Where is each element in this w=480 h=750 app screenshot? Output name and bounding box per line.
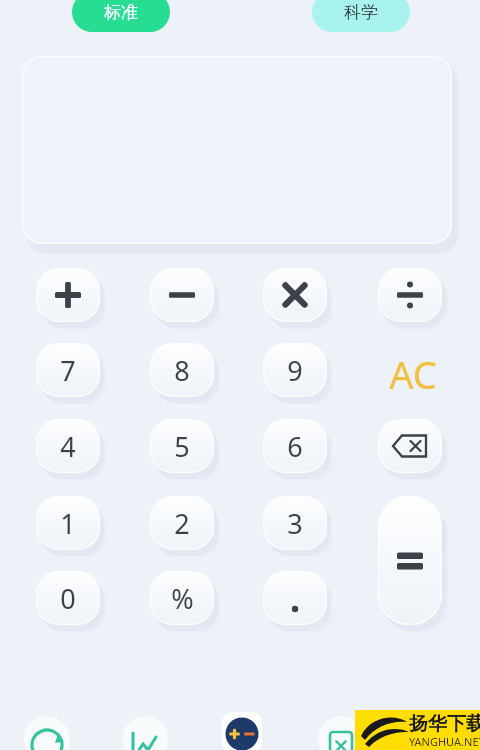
- staticText: 2: [174, 505, 190, 542]
- button[interactable]: 1: [36, 496, 106, 558]
- button[interactable]: 科学: [312, 0, 410, 32]
- button[interactable]: 8: [150, 343, 220, 405]
- staticText: 8: [174, 352, 190, 389]
- button[interactable]: %: [150, 571, 220, 633]
- button[interactable]: 9: [263, 343, 333, 405]
- button[interactable]: Functions: [318, 716, 364, 750]
- button[interactable]: 4: [36, 419, 106, 481]
- staticText: 4: [60, 428, 76, 465]
- staticText: 1: [60, 505, 76, 542]
- button[interactable]: Minus: [150, 268, 220, 330]
- button[interactable]: Divide: [378, 268, 448, 330]
- button[interactable]: Backspace: [378, 419, 448, 481]
- button[interactable]: Equals: [378, 496, 448, 633]
- button[interactable]: 标准: [72, 0, 170, 32]
- button[interactable]: 7: [36, 343, 106, 405]
- button[interactable]: Multiply: [263, 268, 333, 330]
- button[interactable]: Decimal point: [263, 571, 333, 633]
- button[interactable]: 3: [263, 496, 333, 558]
- staticText: YANGHUA.NET: [409, 734, 480, 749]
- staticText: AC: [389, 348, 437, 400]
- button[interactable]: Plus: [36, 268, 106, 330]
- staticText: %: [171, 580, 194, 617]
- button[interactable]: AC: [378, 343, 448, 405]
- button[interactable]: 0: [36, 571, 106, 633]
- button[interactable]: 5: [150, 419, 220, 481]
- button[interactable]: 2: [150, 496, 220, 558]
- staticText: 科学: [344, 2, 378, 23]
- staticText: 6: [287, 428, 303, 465]
- button[interactable]: Chart: [122, 716, 168, 750]
- staticText: 3: [287, 505, 303, 542]
- staticText: 扬华下载: [409, 712, 480, 736]
- staticText: 9: [287, 352, 303, 389]
- button[interactable]: Calculator: [222, 712, 262, 750]
- button[interactable]: 6: [263, 419, 333, 481]
- button[interactable]: Convert: [24, 716, 70, 750]
- staticText: 7: [60, 352, 76, 389]
- staticText: 标准: [104, 2, 138, 23]
- staticText: 5: [174, 428, 190, 465]
- staticText: 0: [60, 580, 76, 617]
